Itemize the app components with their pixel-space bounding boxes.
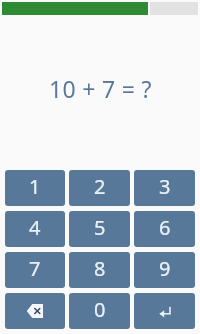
staticText: 10 + 7 = ? — [49, 73, 152, 104]
staticText: 7 — [29, 255, 41, 282]
staticText: 9 — [159, 255, 171, 282]
button[interactable]: 7 — [5, 252, 65, 288]
button[interactable]: 9 — [134, 252, 195, 288]
staticText: 4 — [29, 214, 41, 241]
button[interactable]: 6 — [134, 211, 195, 247]
button[interactable]: 4 — [5, 211, 65, 247]
button[interactable]: 3 — [134, 170, 195, 206]
staticText: 2 — [94, 173, 106, 200]
button[interactable] — [134, 293, 195, 329]
staticText: 5 — [94, 214, 106, 241]
button[interactable]: 5 — [69, 211, 130, 247]
staticText: 8 — [94, 255, 106, 282]
staticText: 6 — [159, 214, 171, 241]
button[interactable] — [5, 293, 65, 329]
button[interactable]: 2 — [69, 170, 130, 206]
staticText: 1 — [29, 173, 41, 200]
button[interactable]: 0 — [69, 293, 130, 329]
button[interactable]: 1 — [5, 170, 65, 206]
staticText: 0 — [94, 296, 106, 323]
staticText: 3 — [159, 173, 171, 200]
button[interactable]: 8 — [69, 252, 130, 288]
